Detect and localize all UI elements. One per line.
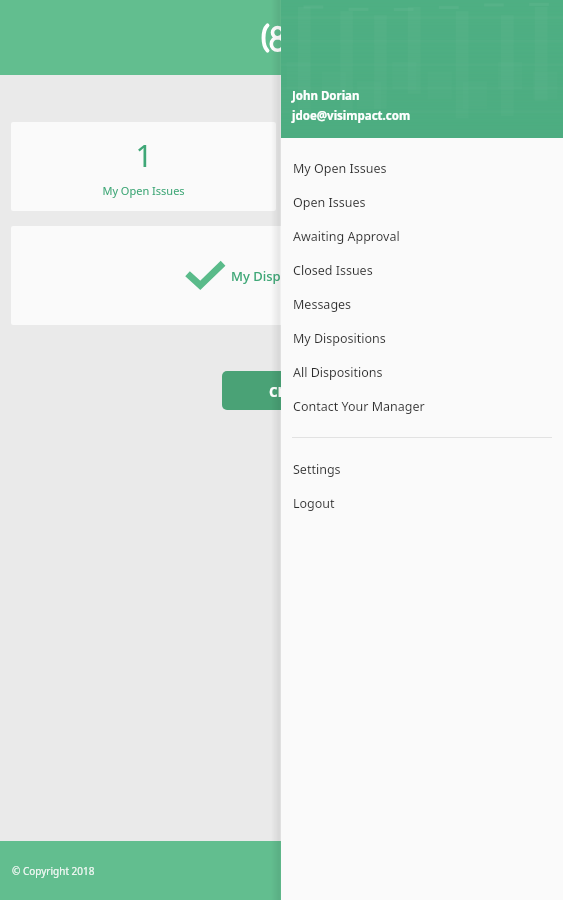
button[interactable]: Settings	[281, 452, 563, 486]
button[interactable]: Messages	[281, 287, 563, 321]
staticText: My Disposition Reports	[231, 267, 375, 285]
staticText: John Dorian	[292, 88, 360, 104]
button[interactable]: Awaiting Approval	[281, 219, 563, 253]
staticText: create new	[269, 379, 361, 402]
staticText: My Open Issues	[102, 183, 185, 198]
button[interactable]: 1	[11, 122, 276, 211]
button[interactable]: Logout	[281, 486, 563, 520]
button[interactable]: Closed Issues	[281, 253, 563, 287]
button[interactable]: My Disposition Reports	[11, 226, 552, 325]
staticText: Awaiting Approval	[293, 228, 400, 245]
button[interactable]: 11	[287, 122, 552, 211]
button[interactable]: create new	[222, 371, 408, 410]
button[interactable]: Open Issues	[281, 185, 563, 219]
staticText: My Open Issues	[293, 160, 387, 177]
button[interactable]: Contact Your Manager	[281, 389, 563, 423]
button[interactable]: All Dispositions	[281, 355, 563, 389]
staticText: Logout	[293, 495, 335, 512]
button[interactable]: My Open Issues	[281, 151, 563, 185]
staticText: Settings	[293, 461, 341, 478]
staticText: Messages	[293, 296, 352, 313]
button[interactable]: My Dispositions	[281, 321, 563, 355]
staticText: Closed Issues	[293, 262, 373, 279]
button[interactable]: App logo	[259, 21, 305, 55]
staticText: jdoe@visimpact.com	[292, 108, 411, 124]
staticText: © Copyright 2018	[12, 864, 95, 878]
staticText: My Dispositions	[293, 330, 386, 347]
staticText: 11	[403, 135, 438, 176]
staticText: Open Issues	[293, 194, 366, 211]
staticText: Contact Your Manager	[293, 398, 425, 415]
staticText: All Dispositions	[293, 364, 383, 381]
staticText: 1	[135, 135, 153, 176]
